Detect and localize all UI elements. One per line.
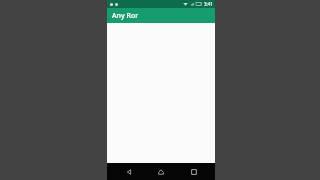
button[interactable]: Home	[150, 163, 172, 180]
button[interactable]: Back	[118, 163, 140, 180]
staticText: Any Ror	[112, 11, 139, 21]
button[interactable]: Recent apps	[183, 163, 205, 180]
button[interactable]: Any Ror	[107, 8, 215, 23]
staticText: 3:41	[204, 1, 213, 7]
